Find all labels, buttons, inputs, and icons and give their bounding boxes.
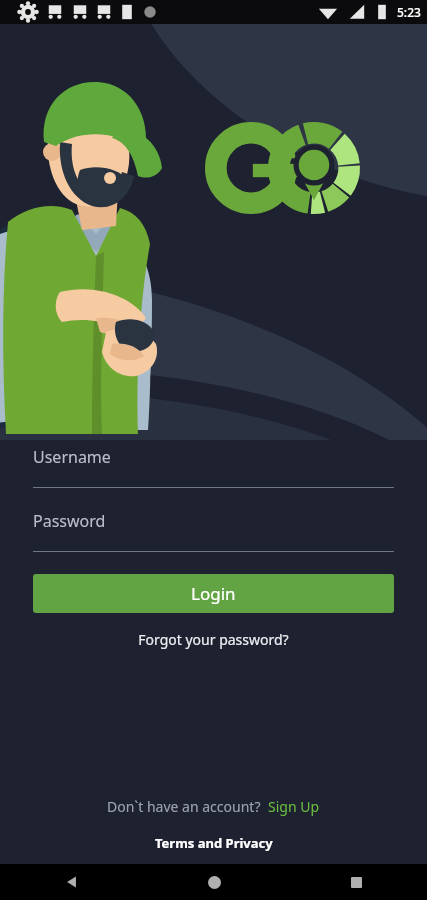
- staticText: Terms and Privacy: [155, 834, 273, 852]
- button[interactable]: Forgot your password?: [33, 630, 394, 649]
- button[interactable]: Home: [143, 864, 285, 900]
- button[interactable]: Sign Up: [268, 797, 320, 816]
- button[interactable]: Username: [33, 446, 394, 488]
- staticText: Username: [33, 446, 111, 468]
- staticText: Login: [191, 582, 236, 605]
- button[interactable]: Login: [33, 574, 394, 613]
- staticText: Don`t have an account?: [107, 797, 261, 816]
- staticText: Sign Up: [268, 797, 320, 816]
- staticText: Password: [33, 510, 106, 532]
- staticText: Forgot your password?: [138, 630, 289, 649]
- button[interactable]: Recents: [285, 864, 427, 900]
- button[interactable]: Password: [33, 510, 394, 552]
- staticText: 5:23: [397, 4, 421, 20]
- button[interactable]: Terms and Privacy: [155, 834, 273, 852]
- button[interactable]: Back: [0, 864, 143, 900]
